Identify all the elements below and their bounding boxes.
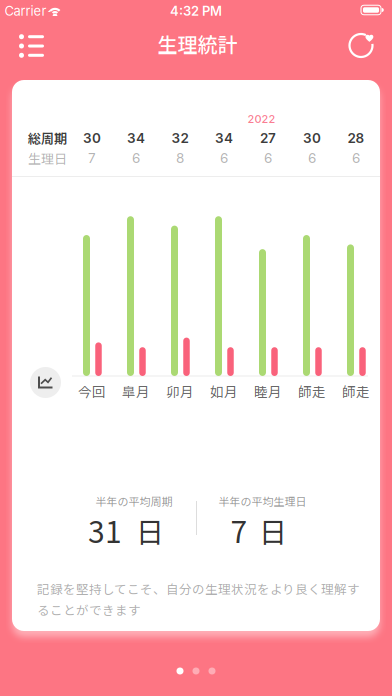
staticText: 34 — [215, 130, 233, 146]
staticText: 皐月 — [122, 381, 150, 401]
staticText: 32 — [171, 130, 188, 146]
staticText: 28 — [347, 130, 364, 146]
staticText: 8 — [176, 150, 184, 166]
staticText: 半年の平均生理日 — [218, 493, 306, 509]
staticText: 日 — [259, 510, 287, 551]
staticText: 4:32 PM — [170, 3, 222, 19]
staticText: 6 — [220, 150, 228, 166]
staticText: 7 — [230, 508, 247, 552]
staticText: 総周期 — [28, 129, 67, 147]
staticText: 睦月 — [254, 381, 282, 401]
staticText: 34 — [127, 130, 145, 146]
staticText: 31 — [88, 508, 122, 552]
staticText: 30 — [303, 130, 321, 146]
staticText: 如月 — [210, 381, 238, 401]
staticText: 半年の平均周期 — [95, 493, 172, 509]
staticText: 日 — [136, 510, 164, 551]
staticText: 7 — [88, 150, 96, 166]
staticText: 記録を堅持してこそ、自分の生理状況をより良く理解することができます — [37, 579, 360, 619]
staticText: 6 — [264, 150, 272, 166]
button[interactable]: Refresh — [340, 27, 384, 63]
staticText: 師走 — [298, 381, 326, 401]
staticText: 卯月 — [166, 381, 194, 401]
staticText: 6 — [352, 150, 360, 166]
staticText: 生理日 — [28, 149, 67, 167]
staticText: 30 — [83, 130, 101, 146]
staticText: 2022 — [247, 112, 275, 126]
staticText: Carrier — [4, 3, 46, 19]
staticText: 今回 — [78, 381, 106, 401]
button[interactable]: Chart type — [30, 367, 61, 398]
staticText: 6 — [308, 150, 316, 166]
button[interactable]: Menu — [9, 28, 53, 64]
staticText: 師走 — [342, 381, 370, 401]
staticText: 27 — [260, 130, 276, 146]
staticText: 生理統計 — [157, 29, 237, 58]
staticText: 6 — [132, 150, 140, 166]
